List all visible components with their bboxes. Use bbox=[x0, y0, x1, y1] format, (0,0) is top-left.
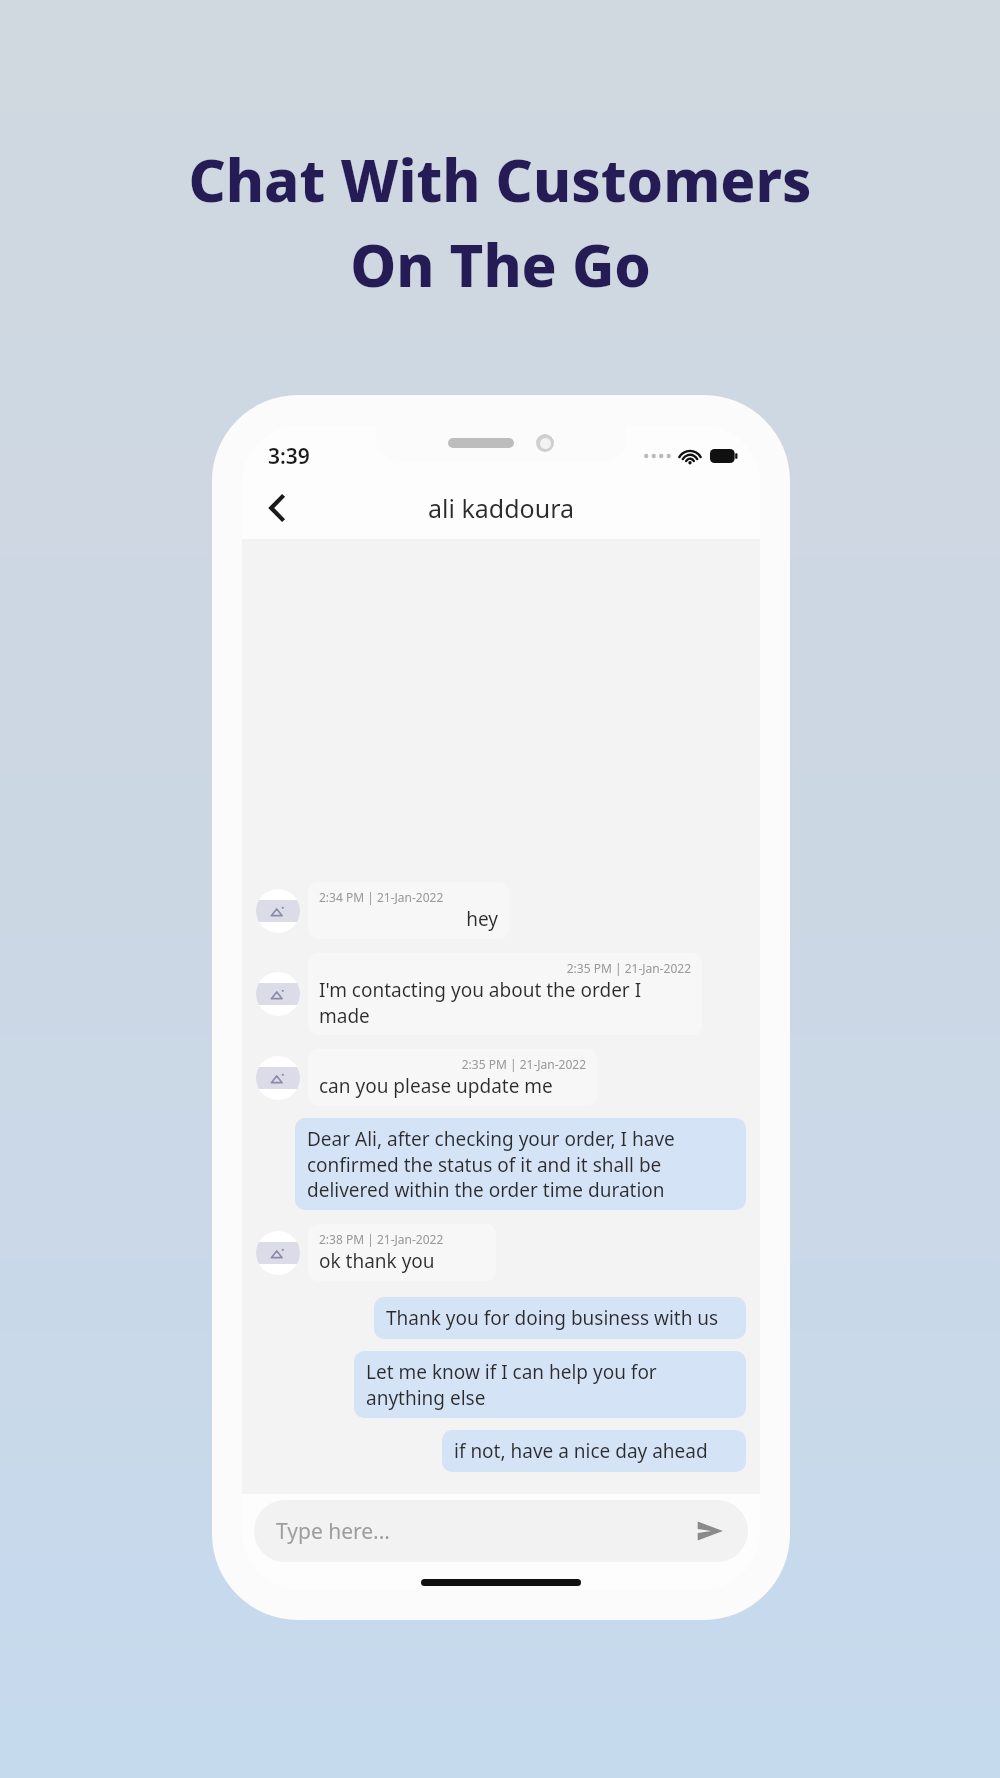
button[interactable]: Back bbox=[254, 484, 302, 532]
button[interactable]: 2:34 PM | 21-Jan-2022 bbox=[308, 882, 509, 939]
staticText: hey bbox=[319, 906, 498, 932]
staticText: 2:38 PM | 21-Jan-2022 bbox=[319, 1231, 485, 1247]
staticText: Dear Ali, after checking your order, I h… bbox=[307, 1126, 734, 1202]
staticText: 2:34 PM | 21-Jan-2022 bbox=[319, 889, 498, 905]
button[interactable]: Type here... bbox=[254, 1500, 748, 1562]
staticText: can you please update me bbox=[319, 1073, 586, 1099]
button[interactable]: 2:35 PM | 21-Jan-2022 bbox=[308, 1049, 597, 1106]
staticText: Chat With Customers bbox=[188, 140, 812, 219]
staticText: I'm contacting you about the order I mad… bbox=[319, 977, 691, 1028]
staticText: Thank you for doing business with us bbox=[386, 1305, 719, 1331]
staticText: Let me know if I can help you for anythi… bbox=[366, 1359, 734, 1410]
staticText: 2:35 PM | 21-Jan-2022 bbox=[319, 1056, 586, 1072]
staticText: 3:39 bbox=[268, 442, 310, 471]
staticText: ali kaddoura bbox=[428, 491, 574, 525]
button[interactable]: if not, have a nice day ahead bbox=[442, 1430, 746, 1472]
button[interactable]: 2:35 PM | 21-Jan-2022 bbox=[308, 953, 702, 1035]
button[interactable]: Thank you for doing business with us bbox=[374, 1297, 746, 1339]
button[interactable]: Let me know if I can help you for anythi… bbox=[354, 1351, 746, 1418]
staticText: ok thank you bbox=[319, 1248, 485, 1274]
button[interactable]: 2:38 PM | 21-Jan-2022 bbox=[308, 1224, 496, 1281]
button[interactable]: Send bbox=[692, 1513, 728, 1549]
staticText: On The Go bbox=[350, 225, 651, 304]
staticText: if not, have a nice day ahead bbox=[454, 1438, 708, 1464]
staticText: 2:35 PM | 21-Jan-2022 bbox=[319, 960, 691, 976]
button[interactable]: Dear Ali, after checking your order, I h… bbox=[295, 1118, 746, 1210]
staticText: Type here... bbox=[276, 1517, 692, 1546]
